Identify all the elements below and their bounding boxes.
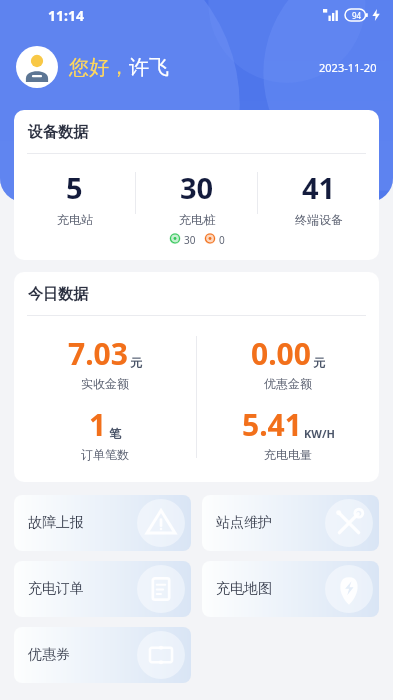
button[interactable]: Profile avatar (16, 46, 58, 88)
staticText: 30 (184, 233, 196, 244)
staticText: 30 (180, 168, 214, 207)
staticText: 94 (352, 10, 362, 21)
staticText: 优惠券 (28, 646, 70, 664)
staticText: 0 (219, 233, 225, 244)
staticText: 故障上报 (28, 514, 84, 532)
staticText: 0.00 (251, 333, 311, 374)
staticText: 订单笔数 (81, 447, 129, 462)
button[interactable]: 充电地图 (202, 561, 379, 617)
staticText: 41 (302, 168, 336, 207)
button[interactable]: 7.03 (14, 326, 196, 397)
staticText: 笔 (109, 426, 121, 441)
staticText: 实收金额 (81, 376, 129, 391)
button[interactable]: 1 (14, 397, 196, 468)
staticText: 元 (130, 355, 142, 370)
staticText: 今日数据 (28, 285, 88, 304)
button[interactable]: 故障上报 (14, 495, 191, 551)
staticText: KW/H (304, 426, 335, 441)
staticText: 5 (66, 168, 83, 207)
button[interactable]: 5.41 (197, 397, 379, 468)
button[interactable]: 今日数据 (14, 272, 379, 482)
staticText: 充电地图 (216, 580, 272, 598)
staticText: 充电桩 (179, 212, 215, 227)
button[interactable]: 优惠券 (14, 627, 191, 683)
staticText: 充电站 (57, 212, 93, 227)
button[interactable]: 站点维护 (202, 495, 379, 551)
staticText: 2023-11-20 (319, 60, 377, 75)
staticText: 7.03 (68, 333, 128, 374)
staticText: 您好， (69, 55, 129, 80)
staticText: 许飞 (129, 55, 169, 80)
staticText: 元 (313, 355, 325, 370)
staticText: 优惠金额 (264, 376, 312, 391)
staticText: 5.41 (242, 404, 302, 445)
button[interactable]: 30 (136, 168, 257, 244)
staticText: 充电电量 (264, 447, 312, 462)
button[interactable]: 5 (14, 168, 135, 227)
button[interactable]: 设备数据 (14, 110, 379, 260)
staticText: 11:14 (48, 6, 84, 25)
button[interactable]: 41 (258, 168, 379, 227)
staticText: 充电订单 (28, 580, 84, 598)
button[interactable]: 充电订单 (14, 561, 191, 617)
staticText: 终端设备 (295, 212, 343, 227)
staticText: 设备数据 (28, 123, 88, 142)
button[interactable]: 0.00 (197, 326, 379, 397)
staticText: 站点维护 (216, 514, 272, 532)
staticText: 1 (89, 404, 107, 445)
